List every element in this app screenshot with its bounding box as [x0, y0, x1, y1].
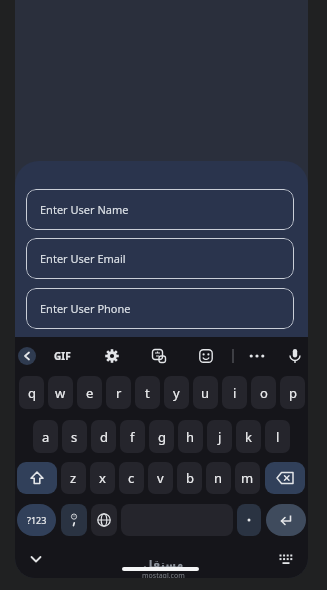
- button[interactable]: [104, 348, 120, 364]
- button[interactable]: c: [119, 462, 144, 494]
- button[interactable]: b: [177, 462, 202, 494]
- button[interactable]: k: [236, 420, 261, 453]
- staticText: t: [145, 384, 150, 402]
- staticText: k: [245, 428, 252, 446]
- staticText: h: [186, 428, 195, 446]
- button[interactable]: i: [222, 376, 247, 409]
- staticText: d: [100, 428, 108, 446]
- staticText: z: [70, 469, 77, 487]
- button[interactable]: y: [164, 376, 189, 409]
- staticText: j: [218, 428, 222, 446]
- staticText: Enter User Name: [40, 202, 129, 217]
- button[interactable]: [277, 551, 295, 569]
- staticText: g: [158, 428, 166, 446]
- button[interactable]: n: [206, 462, 231, 494]
- button[interactable]: p: [280, 376, 305, 409]
- staticText: e: [86, 384, 94, 402]
- button[interactable]: r: [106, 376, 131, 409]
- staticText: q: [28, 384, 36, 402]
- button[interactable]: d: [91, 420, 116, 453]
- button[interactable]: u: [193, 376, 218, 409]
- button[interactable]: v: [148, 462, 173, 494]
- staticText: a: [42, 428, 50, 446]
- button[interactable]: [266, 504, 306, 536]
- button[interactable]: [237, 504, 261, 536]
- button[interactable]: s: [62, 420, 87, 453]
- staticText: c: [128, 469, 135, 487]
- staticText: u: [201, 384, 210, 402]
- staticText: Enter User Email: [40, 251, 126, 266]
- staticText: ?123: [27, 514, 47, 526]
- button[interactable]: h: [178, 420, 203, 453]
- button[interactable]: [151, 348, 167, 364]
- button[interactable]: [265, 462, 305, 494]
- staticText: GIF: [54, 349, 71, 363]
- staticText: s: [71, 428, 78, 446]
- button[interactable]: [17, 346, 37, 366]
- staticText: f: [130, 428, 135, 446]
- staticText: x: [99, 469, 106, 487]
- button[interactable]: [91, 504, 117, 536]
- button[interactable]: e: [77, 376, 102, 409]
- button[interactable]: j: [207, 420, 232, 453]
- button[interactable]: Enter User Email: [26, 238, 294, 279]
- button[interactable]: [286, 347, 304, 365]
- button[interactable]: [29, 552, 43, 566]
- button[interactable]: t: [135, 376, 160, 409]
- button[interactable]: [61, 504, 87, 536]
- button[interactable]: Enter User Name: [26, 189, 294, 230]
- staticText: y: [173, 384, 180, 402]
- button[interactable]: l: [265, 420, 290, 453]
- staticText: o: [260, 384, 268, 402]
- staticText: l: [276, 428, 280, 446]
- button[interactable]: q: [19, 376, 44, 409]
- button[interactable]: z: [61, 462, 86, 494]
- staticText: Enter User Phone: [40, 301, 131, 316]
- button[interactable]: ?123: [17, 504, 56, 536]
- staticText: m: [241, 469, 254, 487]
- staticText: r: [116, 384, 122, 402]
- button[interactable]: w: [48, 376, 73, 409]
- button[interactable]: a: [33, 420, 58, 453]
- button[interactable]: [248, 347, 266, 365]
- staticText: مستقل: [143, 558, 184, 571]
- staticText: p: [289, 384, 297, 402]
- button[interactable]: f: [120, 420, 145, 453]
- staticText: w: [55, 384, 66, 402]
- button[interactable]: o: [251, 376, 276, 409]
- button[interactable]: Enter User Phone: [26, 288, 294, 329]
- staticText: b: [186, 469, 194, 487]
- staticText: v: [157, 469, 164, 487]
- button[interactable]: [198, 348, 214, 364]
- button[interactable]: GIF: [49, 348, 75, 364]
- button[interactable]: g: [149, 420, 174, 453]
- staticText: mostaql.com: [142, 571, 185, 578]
- button[interactable]: m: [235, 462, 260, 494]
- button[interactable]: x: [90, 462, 115, 494]
- staticText: i: [233, 384, 237, 402]
- staticText: n: [214, 469, 223, 487]
- button[interactable]: [225, 348, 241, 364]
- button[interactable]: [17, 462, 57, 494]
